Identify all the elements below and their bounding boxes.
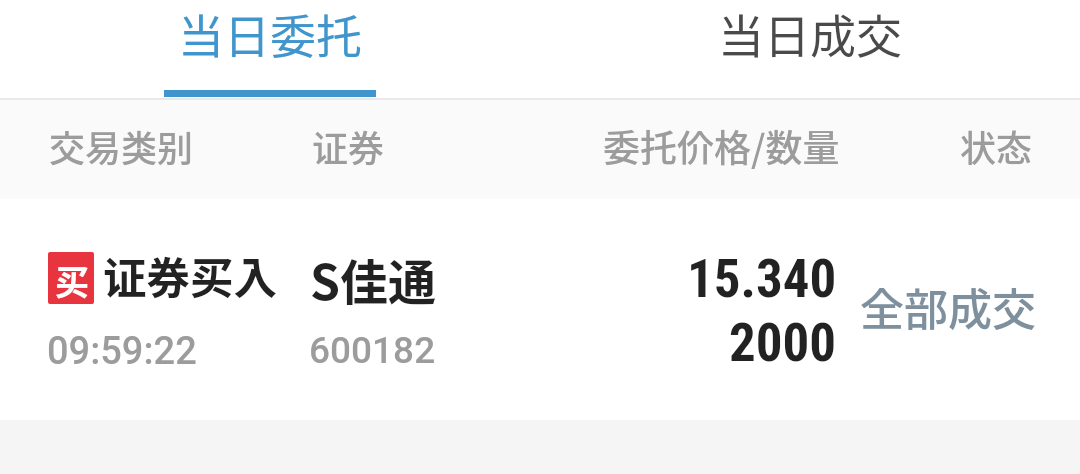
button[interactable]: 当日成交 [540,0,1080,100]
staticText: 15.340 [687,248,837,310]
staticText: 600182 [309,329,436,372]
staticText: 交易类别 [49,120,194,172]
staticText: 证券买入 [103,244,277,307]
staticText: 状态 [960,120,1033,172]
staticText: 委托价格/数量 [603,119,840,173]
staticText: 全部成交 [860,275,1036,339]
button[interactable]: 订单 证券买入 S佳通 600182 15.340 2000 全部成交 [0,199,1080,420]
staticText: S佳通 [310,244,436,314]
staticText: 09:59:22 [47,329,197,374]
staticText: 买 [55,256,89,304]
button[interactable]: 当日委托 [0,0,540,100]
staticText: 2000 [729,312,837,374]
staticText: 当日成交 [718,0,902,67]
staticText: 当日委托 [178,0,362,67]
staticText: 证券 [312,120,385,172]
